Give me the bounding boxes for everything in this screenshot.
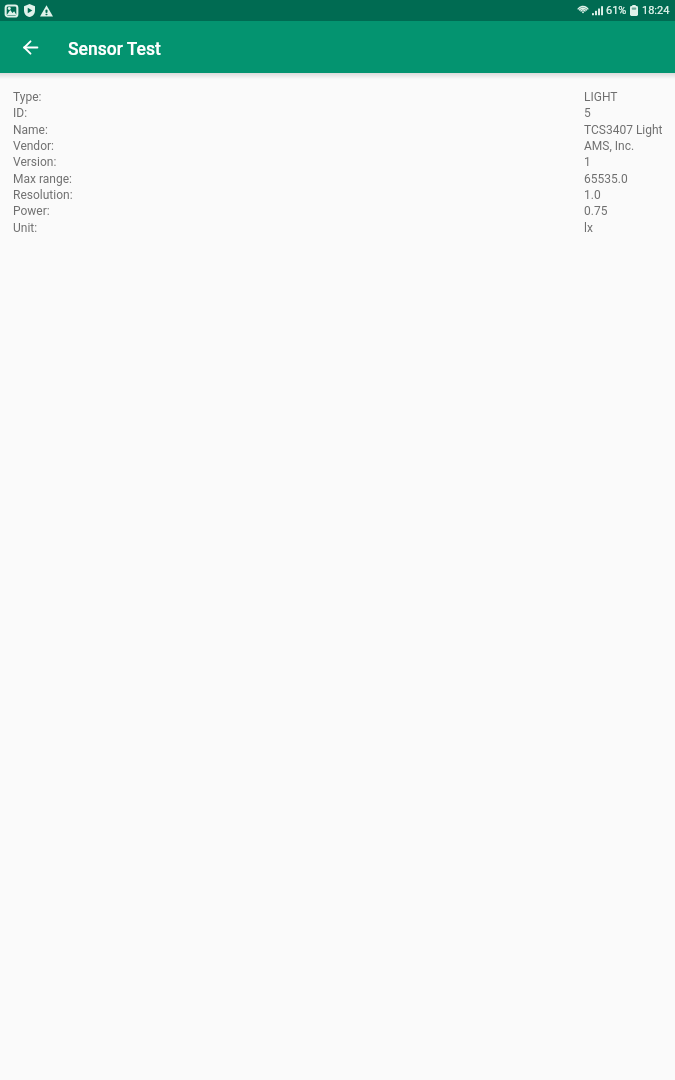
- staticText: 1: [584, 155, 591, 169]
- staticText: TCS3407 Light: [584, 123, 663, 137]
- staticText: LIGHT: [584, 90, 618, 104]
- staticText: 0.75: [584, 204, 608, 218]
- staticText: ID:: [13, 106, 28, 120]
- button[interactable]: Back: [10, 27, 50, 67]
- staticText: Version:: [13, 155, 57, 169]
- staticText: lx: [584, 221, 593, 235]
- staticText: 18:24: [642, 4, 670, 17]
- staticText: 1.0: [584, 188, 601, 202]
- staticText: AMS, Inc.: [584, 139, 635, 153]
- staticText: Max range:: [13, 172, 72, 186]
- staticText: Sensor Test: [68, 39, 161, 60]
- staticText: Power:: [13, 204, 50, 218]
- staticText: 61%: [606, 4, 627, 17]
- staticText: Unit:: [13, 221, 38, 235]
- staticText: Type:: [13, 90, 42, 104]
- staticText: 5: [584, 106, 591, 120]
- staticText: Resolution:: [13, 188, 73, 202]
- staticText: 65535.0: [584, 172, 628, 186]
- staticText: Vendor:: [13, 139, 54, 153]
- staticText: Name:: [13, 123, 48, 137]
